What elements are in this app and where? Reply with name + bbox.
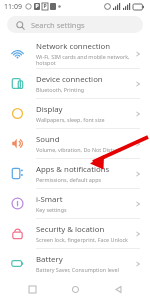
staticText: Key settings bbox=[36, 206, 67, 213]
staticText: Device connection bbox=[36, 74, 103, 85]
staticText: Search settings bbox=[31, 20, 85, 30]
staticText: Volume, vibration, Do Not Disturb bbox=[36, 146, 122, 153]
staticText: Battery bbox=[36, 254, 63, 265]
button[interactable]: Home bbox=[64, 278, 86, 300]
button[interactable]: Device connection bbox=[0, 69, 150, 98]
staticText: Sound bbox=[36, 134, 60, 145]
staticText: i-Smart bbox=[36, 194, 63, 205]
button[interactable]: Network connection bbox=[0, 39, 150, 68]
button[interactable]: Search settings bbox=[7, 16, 143, 33]
button[interactable]: Apps & notifications bbox=[0, 159, 150, 188]
staticText: Battery Saver, Consumption level bbox=[36, 266, 119, 273]
button[interactable]: Display bbox=[0, 99, 150, 128]
staticText: Security & location bbox=[36, 224, 105, 235]
staticText: P bbox=[35, 3, 39, 10]
staticText: Wallpapers, sleep, font size bbox=[36, 116, 105, 123]
staticText: Wi-Fi, SIM cards and mobile network, hot… bbox=[36, 53, 130, 67]
button[interactable]: Back bbox=[107, 278, 129, 300]
button[interactable]: Security & location bbox=[0, 219, 150, 248]
staticText: Display bbox=[36, 104, 63, 115]
staticText: Apps & notifications bbox=[36, 164, 110, 175]
staticText: P bbox=[43, 3, 47, 10]
button[interactable]: Recent apps bbox=[21, 278, 43, 300]
button[interactable]: i-Smart bbox=[0, 189, 150, 218]
button[interactable]: Battery bbox=[0, 249, 150, 278]
staticText: Network connection bbox=[36, 41, 110, 52]
staticText: 11:09 bbox=[4, 2, 22, 12]
staticText: Permissions, default apps bbox=[36, 176, 102, 183]
button[interactable]: Sound bbox=[0, 129, 150, 158]
staticText: Bluetooth, Printing bbox=[36, 86, 85, 93]
staticText: Screen lock, fingerprint, Face Unlock bbox=[36, 236, 128, 243]
